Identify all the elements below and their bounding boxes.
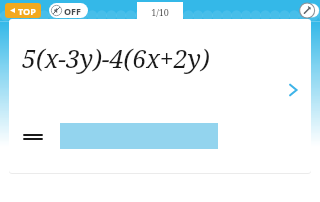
button[interactable]: TOP: [5, 3, 41, 18]
staticText: TOP: [18, 5, 36, 17]
staticText: OFF: [64, 5, 82, 17]
button[interactable]: 1/10: [137, 2, 183, 21]
staticText: 5(x−3y)−4(6x+2y): [22, 41, 210, 75]
staticText: 1/10: [151, 6, 169, 18]
button[interactable]: Edit / pen tool: [300, 2, 317, 19]
button[interactable]: Next question: [280, 77, 306, 103]
button[interactable]: OFF: [49, 3, 88, 18]
